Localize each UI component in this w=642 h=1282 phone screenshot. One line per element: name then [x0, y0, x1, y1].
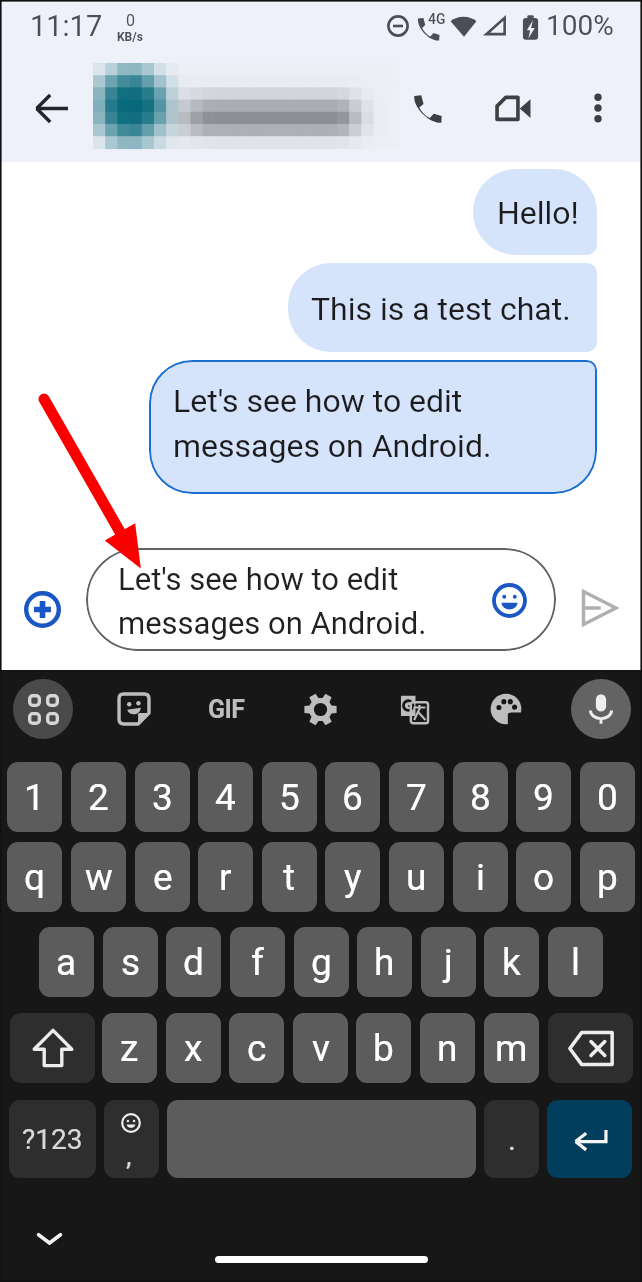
- button[interactable]: 6: [325, 762, 380, 832]
- staticText: 6: [342, 776, 363, 819]
- button[interactable]: 9: [516, 762, 571, 832]
- button[interactable]: Translate: [384, 680, 442, 738]
- button[interactable]: u: [389, 842, 444, 912]
- staticText: 8: [470, 776, 491, 819]
- staticText: ,: [126, 1139, 132, 1172]
- staticText: Let's see how to edit messages on Androi…: [118, 561, 427, 641]
- staticText: g: [311, 941, 332, 984]
- button[interactable]: 2: [71, 762, 126, 832]
- staticText: 0: [126, 11, 135, 30]
- button[interactable]: o: [516, 842, 571, 912]
- button[interactable]: Hide keyboard: [22, 1211, 76, 1265]
- staticText: k: [502, 941, 521, 984]
- button[interactable]: n: [420, 1013, 475, 1083]
- button[interactable]: 4: [198, 762, 253, 832]
- button[interactable]: e: [135, 842, 190, 912]
- staticText: 100%: [546, 9, 614, 42]
- button[interactable]: Let's see how to edit messages on Androi…: [86, 548, 556, 651]
- button[interactable]: Back: [22, 79, 80, 137]
- staticText: q: [24, 856, 46, 899]
- button[interactable]: Emoji: [104, 1100, 159, 1178]
- button[interactable]: g: [294, 927, 349, 997]
- button[interactable]: .: [484, 1100, 539, 1178]
- button[interactable]: j: [421, 927, 476, 997]
- button[interactable]: x: [166, 1013, 221, 1083]
- button[interactable]: v: [293, 1013, 348, 1083]
- staticText: y: [344, 856, 362, 899]
- button[interactable]: a: [39, 927, 94, 997]
- button[interactable]: z: [102, 1013, 157, 1083]
- button[interactable]: p: [580, 842, 635, 912]
- staticText: j: [444, 941, 453, 984]
- button[interactable]: Backspace: [548, 1013, 633, 1083]
- staticText: 7: [406, 776, 427, 819]
- staticText: 4: [215, 776, 236, 819]
- staticText: f: [251, 941, 264, 984]
- button[interactable]: q: [7, 842, 62, 912]
- staticText: a: [56, 941, 77, 984]
- staticText: 5: [279, 776, 300, 819]
- staticText: r: [219, 856, 232, 899]
- button[interactable]: 0: [580, 762, 635, 832]
- staticText: 0: [597, 776, 618, 819]
- button[interactable]: Stickers: [105, 680, 163, 738]
- button[interactable]: Enter: [547, 1100, 632, 1178]
- staticText: 2: [88, 776, 109, 819]
- staticText: 1: [24, 776, 45, 819]
- button[interactable]: Call: [398, 79, 456, 137]
- staticText: v: [312, 1027, 330, 1070]
- button[interactable]: Contact: [93, 63, 388, 147]
- button[interactable]: Hello!: [473, 169, 597, 255]
- button[interactable]: r: [198, 842, 253, 912]
- button[interactable]: 8: [453, 762, 508, 832]
- button[interactable]: m: [484, 1013, 539, 1083]
- button[interactable]: 5: [262, 762, 317, 832]
- button[interactable]: d: [166, 927, 221, 997]
- staticText: d: [183, 941, 204, 984]
- button[interactable]: l: [548, 927, 603, 997]
- button[interactable]: t: [262, 842, 317, 912]
- staticText: p: [597, 856, 618, 899]
- staticText: n: [437, 1027, 458, 1070]
- button[interactable]: Video call: [484, 79, 542, 137]
- button[interactable]: b: [356, 1013, 411, 1083]
- button[interactable]: 1: [7, 762, 62, 832]
- button[interactable]: h: [357, 927, 412, 997]
- button[interactable]: ?123: [9, 1100, 96, 1178]
- button[interactable]: k: [484, 927, 539, 997]
- button[interactable]: GIF: [197, 680, 255, 738]
- button[interactable]: Attach: [14, 581, 70, 637]
- staticText: c: [247, 1027, 267, 1070]
- button[interactable]: Emoji: [484, 575, 534, 625]
- button[interactable]: Space: [167, 1100, 476, 1178]
- button[interactable]: Themes: [477, 680, 535, 738]
- staticText: z: [120, 1027, 139, 1070]
- button[interactable]: Shift: [10, 1013, 95, 1083]
- button[interactable]: y: [325, 842, 380, 912]
- button[interactable]: s: [103, 927, 158, 997]
- staticText: GIF: [208, 695, 245, 724]
- staticText: 11:17: [30, 9, 103, 43]
- staticText: KB/s: [117, 30, 143, 44]
- button[interactable]: w: [71, 842, 126, 912]
- button[interactable]: Settings: [291, 680, 349, 738]
- button[interactable]: 7: [389, 762, 444, 832]
- staticText: h: [374, 941, 395, 984]
- button[interactable]: i: [453, 842, 508, 912]
- button[interactable]: Send: [571, 580, 627, 636]
- button[interactable]: f: [230, 927, 285, 997]
- button[interactable]: Let's see how to edit messages on Androi…: [149, 360, 597, 494]
- staticText: Let's see how to edit messages on Androi…: [173, 382, 492, 464]
- button[interactable]: More options: [569, 79, 627, 137]
- button[interactable]: This is a test chat.: [288, 263, 597, 352]
- staticText: 9: [533, 776, 554, 819]
- button[interactable]: Keyboard apps: [13, 679, 73, 739]
- staticText: m: [495, 1027, 528, 1070]
- staticText: Hello!: [497, 194, 579, 232]
- button[interactable]: 3: [135, 762, 190, 832]
- staticText: 4G: [428, 11, 446, 27]
- staticText: t: [283, 856, 296, 899]
- staticText: 3: [152, 776, 173, 819]
- button[interactable]: Voice input: [571, 679, 631, 739]
- button[interactable]: c: [229, 1013, 284, 1083]
